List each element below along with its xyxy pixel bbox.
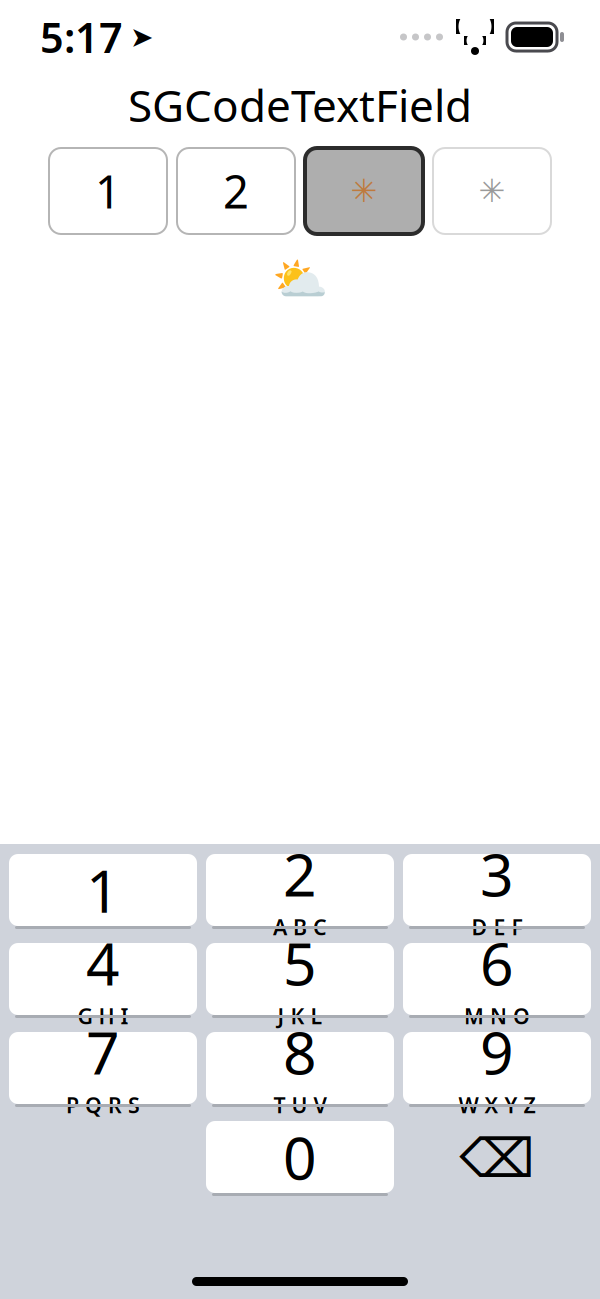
button[interactable]: 9 [403, 1032, 591, 1107]
staticText: 2 [283, 835, 317, 913]
button[interactable]: 8 [206, 1032, 394, 1107]
staticText: J K L [277, 1002, 322, 1030]
button[interactable]: Code digit 2 [177, 148, 295, 234]
staticText: A B C [273, 913, 327, 941]
button[interactable]: 4 [9, 943, 197, 1018]
staticText: 5 [283, 924, 317, 1002]
staticText: ✳ [478, 173, 505, 209]
staticText: M N O [464, 1002, 530, 1030]
button[interactable]: 5 [206, 943, 394, 1018]
staticText: 6 [480, 924, 514, 1002]
staticText: W X Y Z [458, 1091, 535, 1119]
button[interactable]: Code digit, hidden [305, 148, 423, 234]
staticText: ➤ [130, 21, 153, 53]
staticText: 0 [283, 1118, 317, 1196]
button[interactable]: 6 [403, 943, 591, 1018]
staticText: ⌫ [459, 1128, 534, 1189]
staticText: 5:17 [40, 10, 123, 64]
button[interactable]: 1 [9, 854, 197, 929]
staticText: ⛅️ [272, 254, 328, 306]
staticText: P Q R S [66, 1091, 140, 1119]
staticText: 2 [223, 161, 249, 221]
staticText: 3 [480, 835, 514, 913]
button[interactable]: Code digit, hidden [433, 148, 551, 234]
button[interactable]: 2 [206, 854, 394, 929]
staticText: 1 [86, 851, 120, 929]
button[interactable]: 7 [9, 1032, 197, 1107]
staticText: SGCodeTextField [128, 76, 472, 134]
staticText: 4 [86, 924, 120, 1002]
staticText: 7 [86, 1013, 120, 1091]
button[interactable]: Delete [403, 1121, 591, 1196]
button[interactable]: 3 [403, 854, 591, 929]
staticText: G H I [77, 1002, 128, 1030]
staticText: T U V [273, 1091, 326, 1119]
staticText: ✳ [350, 173, 377, 209]
staticText: 8 [283, 1013, 317, 1091]
staticText: 9 [480, 1013, 514, 1091]
button[interactable]: Code digit 1 [49, 148, 167, 234]
staticText: D E F [471, 913, 522, 941]
button[interactable]: 0 [206, 1121, 394, 1196]
staticText: 1 [95, 161, 121, 221]
